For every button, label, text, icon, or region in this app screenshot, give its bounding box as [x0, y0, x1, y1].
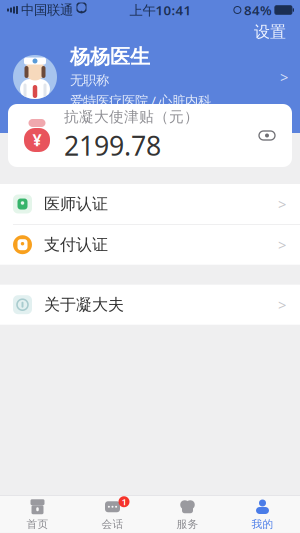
button[interactable]: ¥ — [8, 104, 292, 167]
staticText: 会话 — [101, 518, 123, 531]
button[interactable]: 支付认证 — [0, 225, 300, 265]
button[interactable]: 杨杨医生 — [0, 44, 300, 110]
button[interactable]: 首页 — [0, 496, 75, 533]
staticText: > — [280, 67, 288, 87]
staticText: 中国联通 — [21, 2, 73, 18]
staticText: > — [278, 295, 286, 314]
staticText: > — [278, 194, 286, 214]
staticText: 上午10:41 — [129, 1, 191, 19]
staticText: 无职称 — [70, 72, 109, 89]
staticText: > — [278, 235, 286, 254]
staticText: 服务 — [176, 518, 198, 531]
staticText: 关于凝大夫 — [44, 295, 124, 315]
staticText: 我的 — [251, 518, 273, 531]
button[interactable]: 服务 — [150, 496, 225, 533]
staticText: 杨杨医生 — [70, 45, 150, 69]
staticText: 支付认证 — [44, 235, 108, 255]
button[interactable]: 医师认证 — [0, 184, 300, 224]
staticText: 抗凝大使津贴（元） — [64, 108, 199, 126]
button[interactable]: 1 — [75, 496, 150, 533]
button[interactable]: 关于凝大夫 — [0, 285, 300, 325]
staticText: 1 — [121, 496, 126, 508]
button[interactable]: 我的 — [225, 496, 300, 533]
button[interactable]: 设置 — [244, 18, 296, 46]
staticText: 设置 — [254, 22, 286, 42]
staticText: 2199.78 — [64, 128, 161, 163]
staticText: 84% — [244, 1, 272, 19]
staticText: 首页 — [26, 518, 48, 531]
staticText: 爱特医疗医院 / 心脏内科 — [70, 92, 211, 109]
staticText: 医师认证 — [44, 194, 108, 214]
staticText: ¥ — [32, 129, 41, 151]
